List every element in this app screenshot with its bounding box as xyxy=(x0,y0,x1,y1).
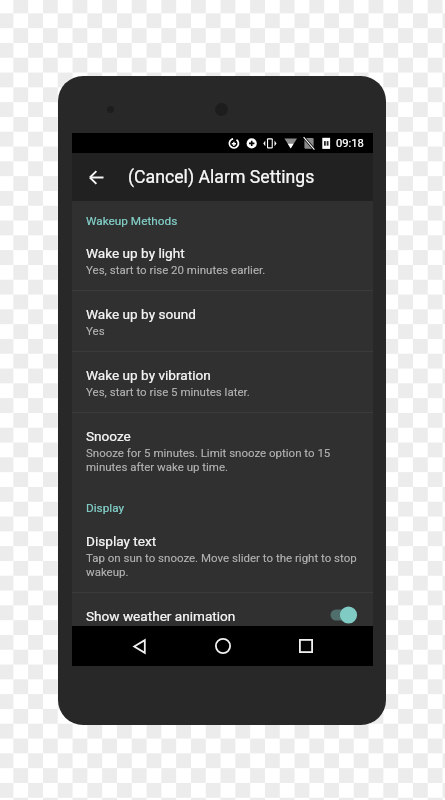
button[interactable]: Wake up by vibration xyxy=(72,352,373,412)
staticText: Wakeup Methods xyxy=(86,214,178,228)
button[interactable]: Recents xyxy=(278,626,336,666)
button[interactable]: Home xyxy=(194,626,252,666)
button[interactable]: Back xyxy=(72,153,119,201)
staticText: Yes xyxy=(86,324,105,337)
button[interactable]: Back xyxy=(111,626,169,666)
staticText: Show weather animation xyxy=(86,608,328,624)
button[interactable]: Show weather animation xyxy=(72,593,373,626)
button[interactable]: Display text xyxy=(72,518,373,592)
staticText: Tap on sun to snooze. Move slider to the… xyxy=(86,551,361,579)
staticText: Yes, start to rise 5 minutes later. xyxy=(86,385,250,398)
staticText: (Cancel) Alarm Settings xyxy=(128,167,315,188)
staticText: Wake up by vibration xyxy=(86,367,211,383)
staticText: Wake up by light xyxy=(86,245,185,261)
staticText: Snooze for 5 minutes. Limit snooze optio… xyxy=(86,446,361,474)
staticText: Yes, start to rise 20 minutes earlier. xyxy=(86,263,266,276)
staticText: Snooze xyxy=(86,428,131,444)
button[interactable]: Wake up by light xyxy=(72,230,373,290)
button[interactable]: Wake up by sound xyxy=(72,291,373,351)
staticText: Display xyxy=(86,501,125,515)
staticText: Wake up by sound xyxy=(86,306,196,322)
button[interactable]: Snooze xyxy=(72,413,373,488)
staticText: 09:18 xyxy=(336,137,364,150)
staticText: Display text xyxy=(86,533,157,549)
